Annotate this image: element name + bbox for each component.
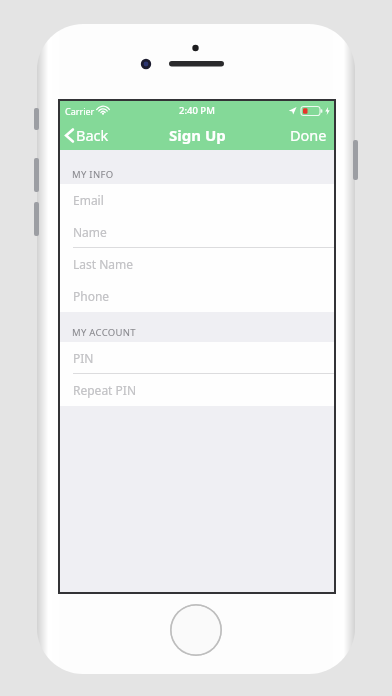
staticText: Phone xyxy=(73,288,110,304)
button[interactable]: Phone xyxy=(60,280,334,312)
staticText: Name xyxy=(73,224,107,240)
staticText: Repeat PIN xyxy=(73,382,137,398)
button[interactable]: Last Name xyxy=(60,248,334,280)
staticText: MY ACCOUNT xyxy=(72,326,136,339)
button[interactable]: Name xyxy=(60,216,334,248)
staticText: Back xyxy=(76,125,109,145)
staticText: PIN xyxy=(73,350,94,366)
staticText: Sign Up xyxy=(169,125,226,145)
staticText: Email xyxy=(73,192,104,208)
staticText: Carrier xyxy=(65,105,95,117)
button[interactable]: Back xyxy=(60,121,117,149)
button[interactable]: Email xyxy=(60,184,334,216)
staticText: Done xyxy=(290,125,327,145)
staticText: Last Name xyxy=(73,256,134,272)
staticText: 2:40 PM xyxy=(179,104,215,117)
button[interactable]: Repeat PIN xyxy=(60,374,334,406)
button[interactable]: Done xyxy=(283,121,334,149)
button[interactable]: PIN xyxy=(60,342,334,374)
staticText: MY INFO xyxy=(72,168,114,181)
